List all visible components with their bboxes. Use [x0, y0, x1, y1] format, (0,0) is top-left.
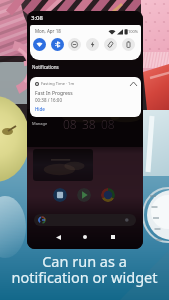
button[interactable] [33, 149, 93, 181]
staticText: 100% [128, 29, 139, 34]
button[interactable]: Home [78, 230, 92, 244]
staticText: 08 [101, 116, 115, 132]
staticText: Notifications [32, 64, 59, 70]
button[interactable]: Recent apps [106, 230, 120, 244]
button[interactable]: Wi-Fi [33, 38, 46, 51]
staticText: 3:08 [31, 14, 43, 22]
staticText: Can run as a notification or widget [0, 251, 169, 287]
button[interactable]: Battery saver [122, 38, 135, 51]
button[interactable]: Do not disturb [68, 38, 81, 51]
button[interactable]: Flashlight [86, 38, 99, 51]
staticText: Hide [35, 106, 45, 112]
button[interactable]: Manage [32, 121, 48, 126]
button[interactable]: Search [34, 214, 136, 226]
staticText: 38 [82, 116, 96, 132]
staticText: Mon, Apr 18 [35, 28, 61, 34]
staticText: 00:38 / 16:00 [35, 97, 63, 103]
staticText: Fasting Time · 1m [41, 81, 75, 86]
button[interactable]: Calculator [53, 188, 67, 202]
button[interactable]: Bluetooth [51, 38, 64, 51]
staticText: Fast In Progress [35, 90, 73, 97]
button[interactable]: Auto-rotate [104, 38, 117, 51]
button[interactable]: Play Store [77, 188, 91, 202]
button[interactable]: Hide [35, 106, 45, 112]
button[interactable]: Fasting Time · 1m [30, 77, 141, 117]
button[interactable]: Chrome [101, 188, 115, 202]
staticText: 08 [63, 116, 77, 132]
button[interactable]: Back [51, 230, 65, 244]
